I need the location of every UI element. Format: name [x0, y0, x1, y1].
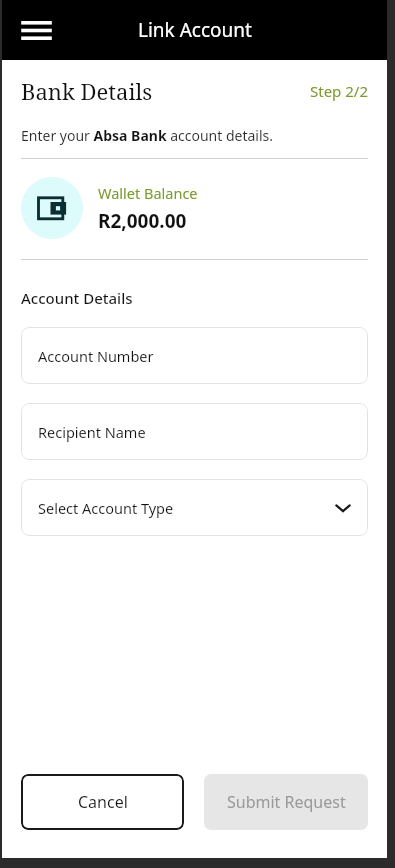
staticText: Select Account Type: [38, 498, 174, 518]
staticText: Step 2/2: [310, 81, 368, 101]
staticText: Account Number: [38, 346, 154, 366]
staticText: R2,000.00: [98, 208, 187, 234]
button[interactable]: Select Account Type: [21, 479, 368, 536]
staticText: Account Details: [21, 288, 133, 308]
button[interactable]: Cancel: [21, 774, 184, 830]
staticText: Submit Request: [227, 791, 346, 813]
button[interactable]: Recipient Name: [21, 403, 368, 460]
staticText: Bank Details: [21, 76, 153, 106]
button[interactable]: Account Number: [21, 327, 368, 384]
staticText: Enter your Absa Bank account details.: [21, 126, 274, 145]
staticText: Wallet Balance: [98, 183, 198, 203]
staticText: Cancel: [78, 791, 128, 813]
staticText: Link Account: [138, 17, 252, 43]
staticText: Recipient Name: [38, 422, 146, 442]
button[interactable]: Submit Request: [204, 774, 368, 830]
button[interactable]: Open navigation menu: [12, 6, 60, 54]
